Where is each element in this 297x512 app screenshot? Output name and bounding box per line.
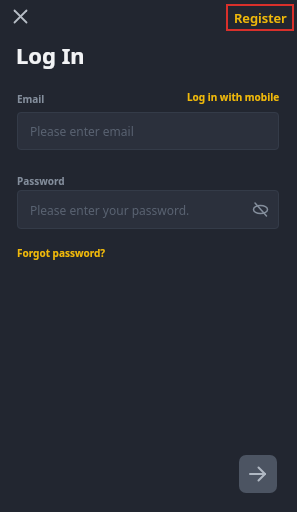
button[interactable]: Log in with mobile <box>187 90 280 104</box>
staticText: Please enter email <box>30 123 134 139</box>
staticText: Log In <box>16 40 85 70</box>
button[interactable] <box>239 455 277 493</box>
button[interactable]: Forgot password? <box>17 246 106 260</box>
button[interactable]: Register <box>226 4 294 31</box>
staticText: Please enter your password. <box>30 202 190 218</box>
staticText: Register <box>234 9 287 27</box>
staticText: Password <box>17 174 65 188</box>
button[interactable]: Please enter your password. <box>17 190 279 229</box>
button[interactable]: Please enter email <box>17 112 279 150</box>
button[interactable] <box>8 4 33 29</box>
button[interactable] <box>252 201 269 218</box>
staticText: Email <box>17 92 45 106</box>
